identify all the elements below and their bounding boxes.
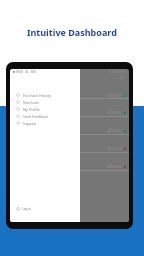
staticText: 09:48 4G 86% xyxy=(108,70,126,74)
staticText: 2021-09-12 xyxy=(107,111,122,115)
staticText: 4G xyxy=(25,70,29,74)
button[interactable]: Purchase History xyxy=(16,91,80,98)
staticText: 2021-09-12 xyxy=(107,94,122,98)
staticText: Intuitive Dashboard xyxy=(27,26,117,38)
staticText: Send Feedback xyxy=(23,114,48,118)
staticText: 2021-09-12 xyxy=(107,165,122,169)
button[interactable]: Support xyxy=(16,119,80,126)
staticText: New favorite shop level xyxy=(13,121,52,126)
button[interactable]: Discount applied xyxy=(10,99,129,116)
staticText: 2021-09-12 xyxy=(107,147,122,151)
button[interactable]: New favorite shop level xyxy=(10,117,129,134)
button[interactable]: 2021-09-12 xyxy=(10,153,129,170)
staticText: Discount applied xyxy=(13,103,41,108)
button[interactable]: Send Feedback xyxy=(16,112,80,119)
staticText: Shortcuts xyxy=(23,100,39,104)
button[interactable]: Log in xyxy=(16,205,80,213)
staticText: 86% xyxy=(31,70,37,74)
staticText: Support xyxy=(23,121,37,125)
button[interactable]: Your bonus has expired xyxy=(10,135,129,152)
button[interactable]: Shortcuts xyxy=(16,98,80,105)
button[interactable]: My Profile xyxy=(16,105,80,112)
staticText: 09:48 xyxy=(16,70,23,74)
staticText: 2021-09-12 xyxy=(107,129,122,133)
button[interactable]: Search xyxy=(120,75,125,80)
staticText: My Profile xyxy=(23,107,40,111)
staticText: Purchase History xyxy=(23,93,52,97)
staticText: Log in xyxy=(22,207,32,211)
